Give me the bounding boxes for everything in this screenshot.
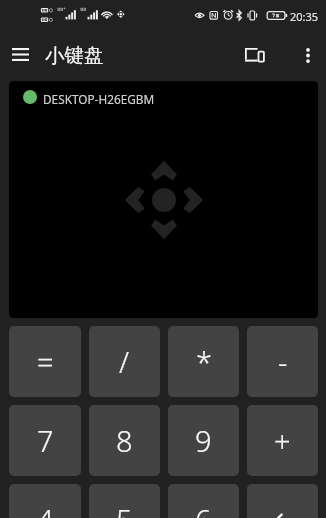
staticText: 9	[195, 421, 212, 460]
staticText: =	[37, 342, 54, 381]
button[interactable]: 8	[89, 405, 160, 476]
button[interactable]: More options	[290, 36, 326, 76]
staticText: 8	[116, 421, 133, 460]
staticText: 5	[116, 500, 133, 518]
staticText: 6	[195, 500, 212, 518]
button[interactable]: Touchpad	[9, 81, 318, 318]
staticText: 20:35	[290, 9, 319, 24]
button[interactable]: 9	[168, 405, 239, 476]
staticText: DESKTOP-H26EGBM	[43, 91, 155, 107]
button[interactable]: Connected devices	[234, 36, 275, 76]
staticText: 小键盘	[45, 43, 104, 68]
button[interactable]: =	[9, 326, 81, 397]
button[interactable]: 7	[9, 405, 81, 476]
button[interactable]: +	[247, 405, 318, 476]
button[interactable]: 5	[89, 484, 160, 518]
button[interactable]: Open navigation drawer	[0, 36, 40, 76]
button[interactable]: -	[247, 326, 318, 397]
staticText: *	[196, 342, 212, 381]
button[interactable]: *	[168, 326, 239, 397]
staticText: +	[274, 421, 291, 460]
staticText: -	[278, 342, 288, 381]
staticText: 4	[37, 500, 54, 518]
button[interactable]: /	[89, 326, 160, 397]
staticText: 7	[37, 421, 54, 460]
staticText: /	[119, 342, 130, 381]
button[interactable]: Enter	[247, 484, 318, 518]
button[interactable]: 4	[9, 484, 81, 518]
button[interactable]: 6	[168, 484, 239, 518]
